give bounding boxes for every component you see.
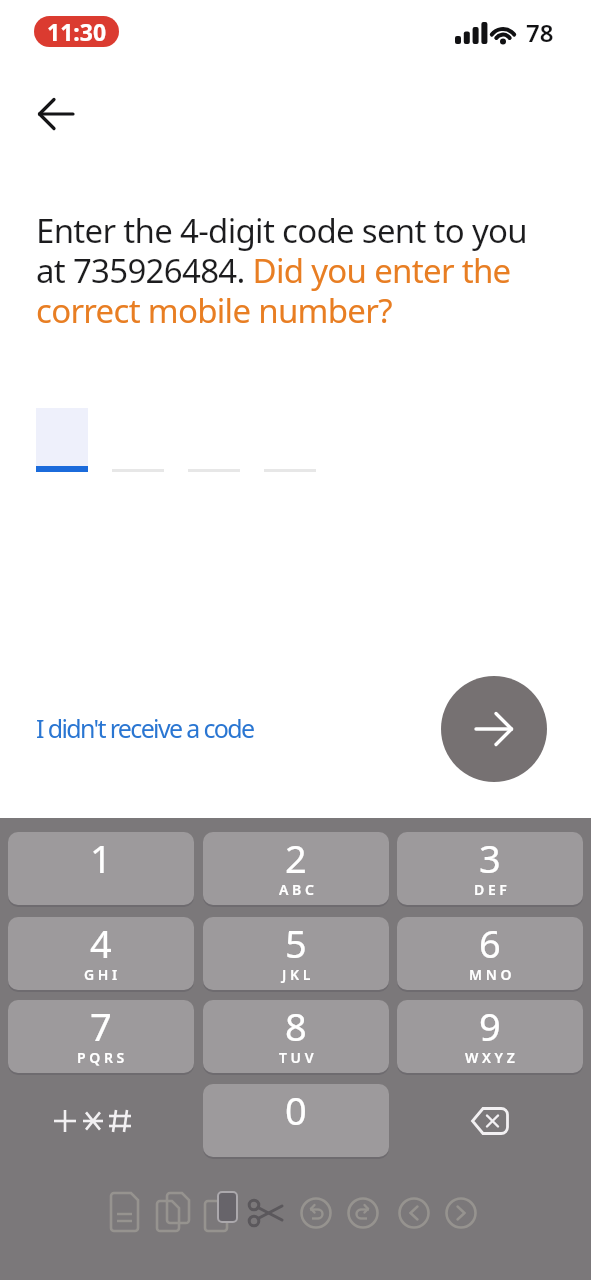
button[interactable]: 1 <box>8 832 194 905</box>
staticText: 8 <box>285 1000 307 1052</box>
staticText: D E F <box>474 880 507 899</box>
staticText: T U V <box>279 1048 314 1067</box>
staticText: 1 <box>90 832 112 884</box>
staticText: P Q R S <box>77 1048 125 1067</box>
staticText: 78 <box>526 16 554 49</box>
staticText: 0 <box>285 1084 307 1136</box>
button[interactable] <box>397 1084 583 1157</box>
staticText: 2 <box>285 832 307 884</box>
button[interactable] <box>28 88 82 140</box>
staticText: I didn't receive a code <box>36 711 254 745</box>
staticText: 11:30 <box>47 16 107 47</box>
staticText: G H I <box>84 965 118 984</box>
staticText: A B C <box>279 880 314 899</box>
staticText: M N O <box>469 965 512 984</box>
button[interactable]: 9 <box>397 1000 583 1073</box>
staticText: 3 <box>479 832 501 884</box>
staticText: 5 <box>285 917 307 969</box>
button[interactable]: I didn't receive a code <box>36 711 254 745</box>
staticText: 7 <box>90 1000 112 1052</box>
button[interactable]: 4 <box>8 917 194 990</box>
staticText: Enter the 4-digit code sent to you <box>36 208 528 253</box>
button[interactable]: 6 <box>397 917 583 990</box>
staticText: at 735926484. Did you enter the <box>36 248 511 293</box>
button[interactable]: 2 <box>203 832 389 905</box>
staticText: 9 <box>479 1000 501 1052</box>
button[interactable]: 7 <box>8 1000 194 1073</box>
staticText: 4 <box>90 917 112 969</box>
button[interactable]: 0 <box>203 1084 389 1157</box>
staticText: 6 <box>479 917 501 969</box>
staticText: J K L <box>282 965 311 984</box>
staticText: correct mobile number? <box>36 288 392 333</box>
staticText: W X Y Z <box>465 1048 515 1067</box>
button[interactable] <box>441 676 547 782</box>
button[interactable]: 3 <box>397 832 583 905</box>
button[interactable] <box>8 1084 194 1157</box>
button[interactable]: 8 <box>203 1000 389 1073</box>
button[interactable]: 5 <box>203 917 389 990</box>
